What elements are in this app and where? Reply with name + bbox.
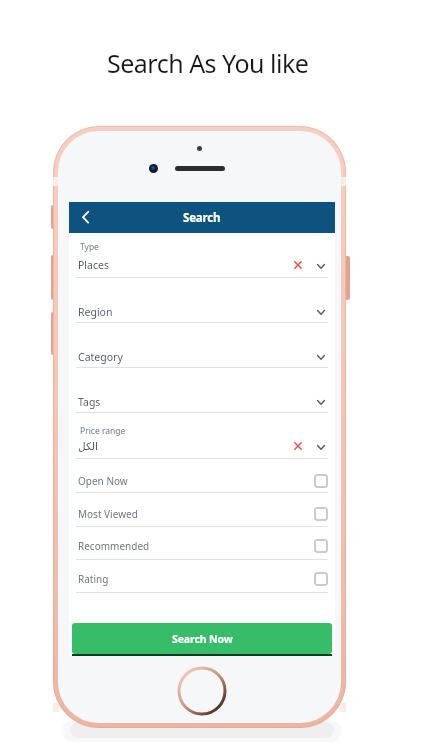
button[interactable] [76, 534, 328, 559]
button[interactable] [76, 420, 328, 458]
button[interactable] [76, 567, 328, 592]
staticText: Category [78, 350, 123, 364]
button[interactable] [76, 206, 98, 230]
staticText: Region [78, 305, 113, 319]
staticText: Type [80, 241, 99, 253]
staticText: الكل [78, 440, 98, 452]
button[interactable] [76, 343, 328, 368]
button[interactable] [76, 469, 328, 492]
button[interactable] [76, 298, 328, 323]
staticText: Tags [78, 395, 101, 409]
staticText: Price range [80, 425, 126, 437]
button[interactable] [76, 388, 328, 413]
button[interactable]: Search [69, 202, 335, 233]
staticText: Recommended [78, 539, 150, 553]
staticText: Search [183, 210, 221, 226]
staticText: Open Now [78, 474, 128, 488]
staticText: Most Viewed [78, 507, 138, 521]
button[interactable] [76, 238, 328, 278]
staticText: Search Now [172, 632, 233, 646]
button[interactable] [76, 502, 328, 526]
staticText: Rating [78, 572, 109, 586]
staticText: Places [78, 258, 109, 272]
button[interactable]: Search Now [72, 623, 332, 654]
staticText: Search As You like [107, 46, 309, 80]
